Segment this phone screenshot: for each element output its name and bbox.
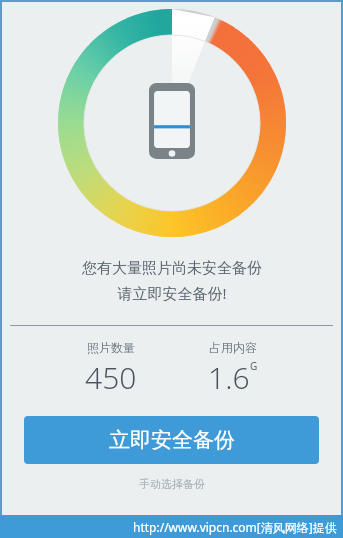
staticText: 立即安全备份 <box>109 427 235 453</box>
staticText: 占用内容 <box>209 340 257 355</box>
button[interactable]: 手动选择备份 <box>123 474 221 494</box>
staticText: G <box>250 359 258 373</box>
button[interactable]: 立即安全备份 <box>24 416 319 464</box>
staticText: http://www.vipcn.com[清风网络]提供 <box>133 519 337 535</box>
staticText: 手动选择备份 <box>139 477 205 491</box>
staticText: 您有大量照片尚未安全备份 <box>82 259 262 278</box>
staticText: 照片数量 <box>87 340 135 355</box>
other: Phone <box>149 83 195 159</box>
staticText: 1.6 <box>208 357 250 398</box>
staticText: 450 <box>85 357 137 398</box>
staticText: 请立即安全备份! <box>117 283 227 303</box>
